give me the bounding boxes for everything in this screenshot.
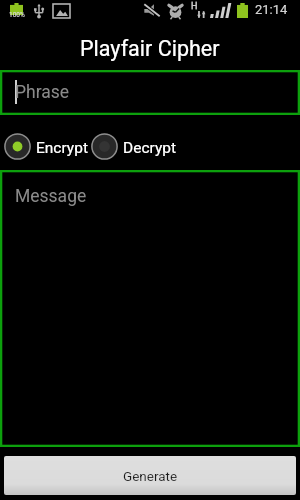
button[interactable] [0,70,300,115]
button[interactable] [0,170,300,447]
staticText: Message [15,186,87,207]
staticText: Phrase [15,82,70,103]
staticText: 100% [9,11,25,19]
staticText: Playfair Cipher [80,36,220,61]
button[interactable]: Generate [4,456,296,495]
staticText: 21:14 [255,2,288,17]
staticText: Generate [123,468,178,484]
staticText: Decrypt [123,139,177,157]
staticText: Encrypt [36,139,88,157]
button[interactable]: Decrypt [91,133,145,160]
button[interactable]: Encrypt [4,133,56,160]
staticText: H [191,1,198,12]
